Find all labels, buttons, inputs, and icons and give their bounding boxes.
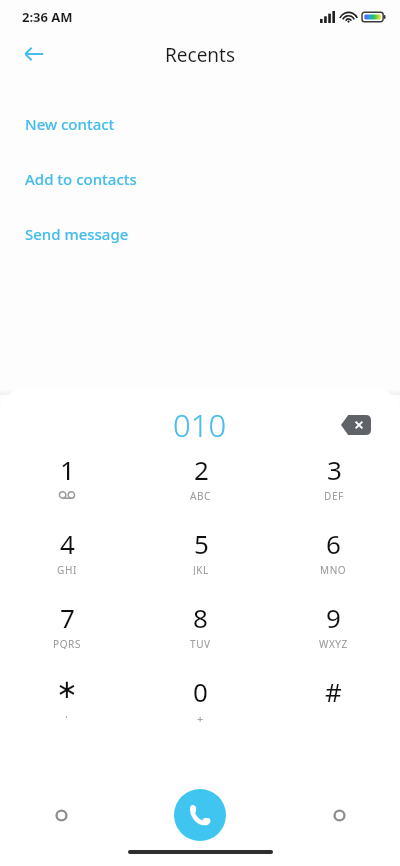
- staticText: 2:36 AM: [22, 8, 73, 26]
- button[interactable]: Call: [174, 789, 226, 841]
- button[interactable]: Send message: [0, 206, 400, 261]
- staticText: 2: [194, 452, 209, 487]
- staticText: 5: [194, 526, 209, 561]
- button[interactable]: 0: [134, 677, 267, 726]
- button[interactable]: 4: [0, 529, 134, 578]
- button[interactable]: 9: [267, 603, 400, 652]
- button[interactable]: Add to contacts: [0, 151, 400, 206]
- button[interactable]: Back: [10, 30, 58, 78]
- staticText: ∗: [56, 674, 78, 704]
- staticText: Add to contacts: [25, 169, 137, 189]
- button[interactable]: New contact: [0, 96, 400, 151]
- staticText: JKL: [193, 563, 209, 575]
- staticText: New contact: [25, 114, 115, 134]
- staticText: #: [325, 674, 342, 709]
- button[interactable]: More options: [44, 798, 78, 832]
- button[interactable]: #: [267, 677, 400, 726]
- staticText: 3: [327, 452, 342, 487]
- button[interactable]: 8: [134, 603, 267, 652]
- staticText: +: [197, 711, 204, 723]
- staticText: 1: [60, 452, 75, 487]
- staticText: GHI: [57, 563, 77, 575]
- staticText: 010: [173, 404, 227, 446]
- staticText: PQRS: [53, 637, 81, 649]
- button[interactable]: 6: [267, 529, 400, 578]
- staticText: Recents: [165, 42, 236, 68]
- staticText: 9: [326, 600, 341, 635]
- button[interactable]: 1: [0, 455, 134, 504]
- staticText: 8: [193, 600, 208, 635]
- button[interactable]: ∗: [0, 677, 134, 721]
- button[interactable]: 5: [134, 529, 267, 578]
- staticText: DEF: [324, 489, 344, 501]
- staticText: 4: [60, 526, 75, 561]
- button[interactable]: 2: [134, 455, 267, 504]
- staticText: MNO: [320, 563, 347, 575]
- button[interactable]: Delete: [334, 403, 378, 447]
- button[interactable]: 7: [0, 603, 134, 652]
- staticText: Send message: [25, 224, 129, 244]
- button[interactable]: Hide dialpad: [322, 798, 356, 832]
- staticText: 7: [60, 600, 75, 635]
- staticText: 0: [193, 674, 208, 709]
- staticText: WXYZ: [319, 637, 348, 649]
- staticText: ABC: [190, 489, 212, 501]
- button[interactable]: 3: [267, 455, 400, 504]
- staticText: 6: [326, 526, 341, 561]
- staticText: ,: [65, 706, 69, 718]
- staticText: TUV: [190, 637, 211, 649]
